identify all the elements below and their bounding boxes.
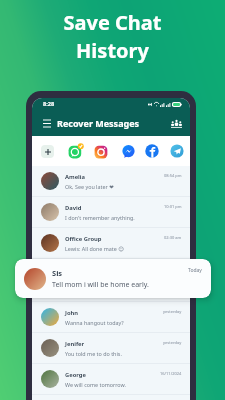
staticText: Ok, See you later ❤ xyxy=(65,183,114,190)
button[interactable]: Open navigation menu xyxy=(40,117,53,130)
staticText: George xyxy=(65,371,86,379)
staticText: Lewis: All done mate 😊 xyxy=(65,245,124,252)
staticText: I don't remember anything. xyxy=(65,214,135,221)
button[interactable]: Jenifer xyxy=(32,333,190,363)
button[interactable]: Instagram xyxy=(94,144,109,159)
button[interactable]: Amelia xyxy=(32,166,190,196)
staticText: Recover Messages xyxy=(57,117,140,129)
button[interactable]: John xyxy=(32,302,190,332)
staticText: Wanna hangout today? xyxy=(65,319,124,326)
staticText: You told me to do this. xyxy=(65,350,122,357)
staticText: We will come tomorrow. xyxy=(65,381,126,388)
button[interactable]: Telegram xyxy=(170,144,184,158)
button[interactable]: WhatsApp xyxy=(68,144,83,159)
staticText: 16/11/2024 xyxy=(160,371,182,376)
staticText: 10:01 pm xyxy=(164,204,182,209)
staticText: Save Chat History xyxy=(0,9,225,64)
button[interactable]: Add app xyxy=(41,145,54,158)
button[interactable]: Office Group xyxy=(32,228,190,258)
staticText: Office Group xyxy=(65,235,102,243)
staticText: Sis xyxy=(52,268,63,278)
button[interactable]: Sis xyxy=(15,259,211,298)
button[interactable]: Messenger xyxy=(122,145,135,158)
staticText: David xyxy=(65,204,82,212)
staticText: Tell mom i will be home early. xyxy=(52,280,149,290)
staticText: 02:30 am xyxy=(164,235,182,240)
staticText: yesterday xyxy=(163,309,182,314)
staticText: yesterday xyxy=(163,340,182,345)
staticText: 08:54 pm xyxy=(164,173,182,178)
staticText: Today xyxy=(188,267,202,274)
button[interactable]: Facebook xyxy=(145,144,159,158)
button[interactable]: Contacts xyxy=(169,116,183,130)
staticText: John xyxy=(65,309,79,317)
button[interactable]: David xyxy=(32,197,190,227)
staticText: Jenifer xyxy=(65,340,85,348)
staticText: 8:28 xyxy=(43,100,55,108)
button[interactable]: George xyxy=(32,364,190,394)
staticText: Amelia xyxy=(65,173,86,181)
